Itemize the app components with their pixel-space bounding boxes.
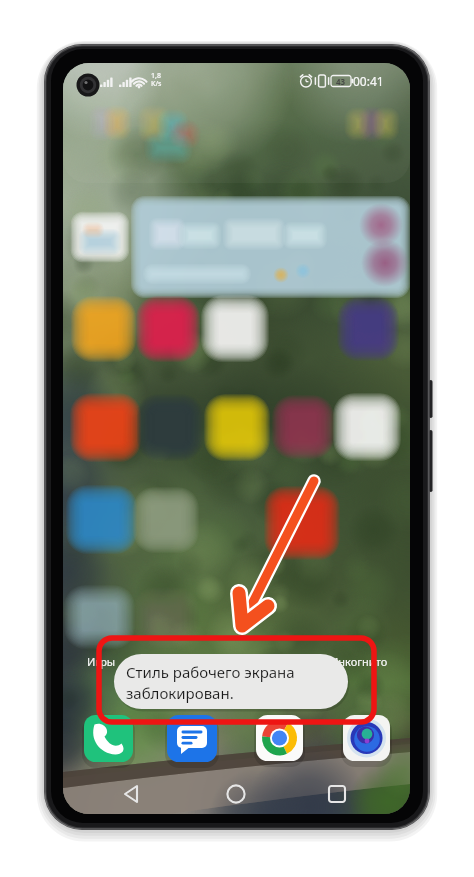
staticText: Инкогнито <box>330 654 388 669</box>
staticText: K/s <box>151 79 162 89</box>
button[interactable]: Back <box>114 781 150 817</box>
staticText: Стиль рабочего экрана заблокирован. <box>126 662 356 704</box>
button[interactable]: Messages <box>168 716 216 764</box>
button[interactable]: Recents <box>322 781 358 817</box>
button[interactable]: Phone <box>84 716 132 764</box>
button[interactable]: Chrome <box>253 716 301 764</box>
staticText: 43 <box>336 76 346 87</box>
staticText: 00:41 <box>353 73 384 89</box>
button[interactable]: Camera <box>344 716 392 764</box>
staticText: 1,8 <box>151 71 161 81</box>
staticText: Игры <box>87 654 116 669</box>
button[interactable]: Home <box>218 781 254 817</box>
